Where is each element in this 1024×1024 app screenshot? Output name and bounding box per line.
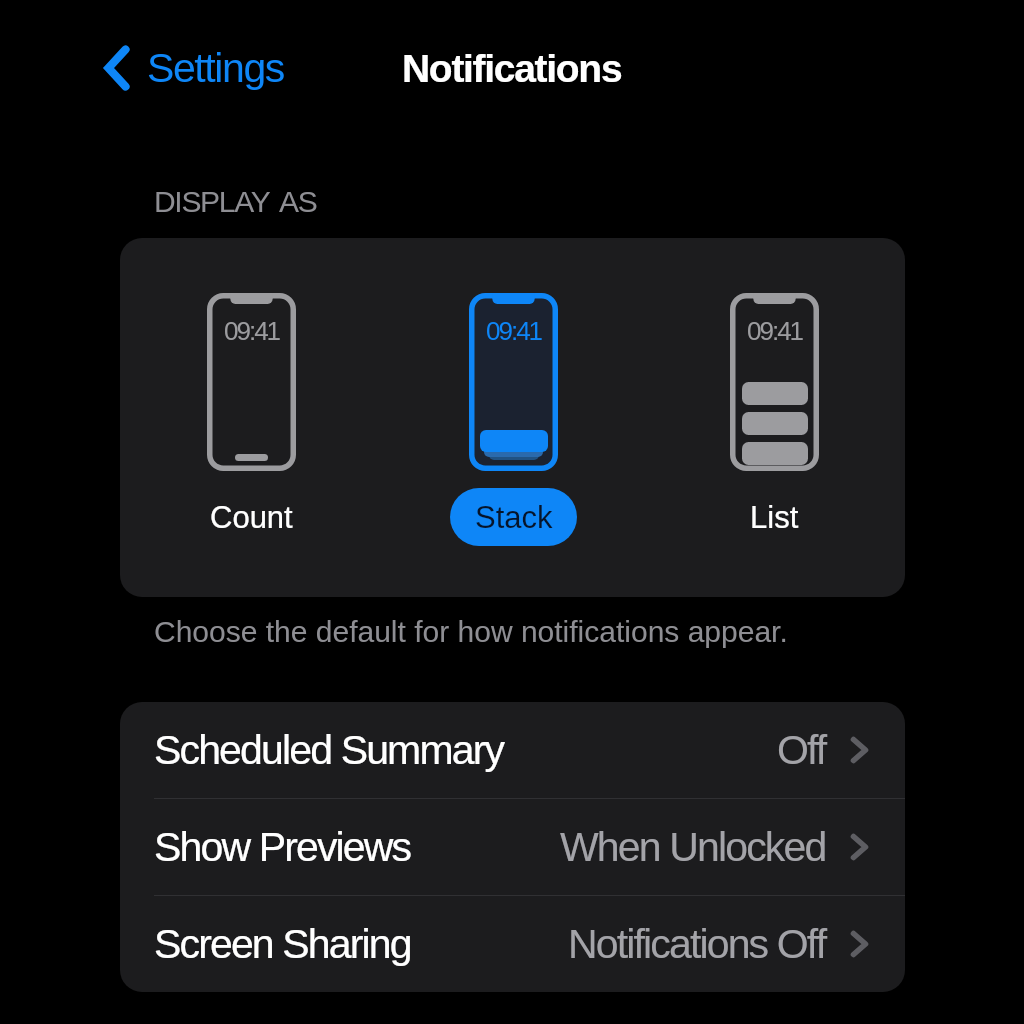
staticText: Notifications (402, 47, 622, 91)
other: Open Show Previews (850, 833, 869, 861)
staticText: List (750, 500, 799, 535)
staticText: AS (279, 185, 317, 219)
button[interactable]: 09:41 (699, 283, 849, 555)
button[interactable]: Back to Settings (100, 41, 294, 95)
staticText: Screen Sharing (154, 921, 411, 967)
button[interactable]: Screen Sharing (120, 896, 905, 992)
staticText: Stack (475, 500, 553, 535)
staticText: Scheduled Summary (154, 727, 504, 773)
staticText: Notifications Off (568, 921, 826, 967)
staticText: Choose the default for how notifications… (154, 615, 788, 649)
other: Open Scheduled Summary (850, 736, 869, 764)
button[interactable]: Show Previews (120, 799, 905, 896)
button[interactable]: 09:41 (438, 283, 588, 555)
staticText: 09:41 (224, 316, 280, 345)
button[interactable]: 09:41 (176, 283, 326, 555)
staticText: Settings (147, 45, 284, 91)
staticText: When Unlocked (560, 824, 826, 870)
staticText: 09:41 (486, 316, 542, 345)
staticText: 09:41 (747, 316, 803, 345)
staticText: Show Previews (154, 824, 411, 870)
staticText: Off (777, 727, 826, 773)
staticText: DISPLAY (154, 185, 270, 219)
other: Back to Settings (104, 45, 130, 91)
other: Open Screen Sharing (850, 930, 869, 958)
staticText: Count (210, 500, 293, 535)
button[interactable]: Scheduled Summary (120, 702, 905, 799)
